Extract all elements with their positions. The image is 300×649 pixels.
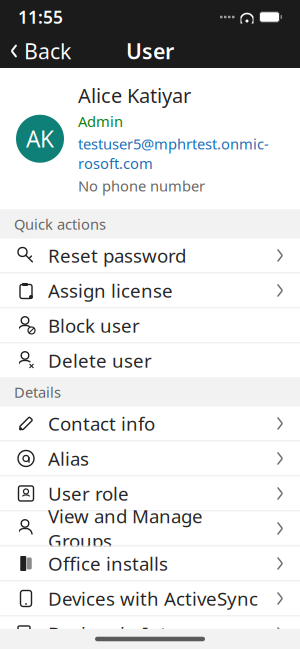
staticText: Reset password — [48, 243, 186, 268]
button[interactable]: User role — [0, 476, 300, 511]
staticText: Devices with ActiveSync — [48, 586, 258, 611]
staticText: Alice Katiyar — [78, 82, 191, 109]
staticText: No phone number — [78, 176, 205, 195]
staticText: Back — [24, 37, 71, 65]
button[interactable]: Delete user — [0, 343, 300, 377]
staticText: Office installs — [48, 551, 168, 576]
staticText: 11:55 — [18, 5, 63, 28]
button[interactable]: Contact info — [0, 406, 300, 441]
button[interactable]: Devices with ActiveSync — [0, 581, 300, 616]
staticText: Admin — [78, 112, 123, 131]
button[interactable]: View and Manage Groups — [0, 511, 300, 546]
staticText: AK — [26, 124, 54, 154]
staticText: User role — [48, 481, 129, 506]
staticText: Alias — [48, 446, 89, 471]
button[interactable]: Assign license — [0, 273, 300, 308]
button[interactable]: Devices in Intune — [0, 616, 300, 649]
button[interactable]: Reset password — [0, 238, 300, 273]
button[interactable]: Block user — [0, 308, 300, 343]
button[interactable]: Alias — [0, 441, 300, 476]
staticText: User — [126, 37, 174, 65]
staticText: Devices in Intune — [48, 621, 202, 646]
staticText: Details — [14, 382, 61, 402]
staticText: Assign license — [48, 278, 173, 303]
staticText: Block user — [48, 313, 140, 338]
staticText: Contact info — [48, 411, 155, 436]
button[interactable]: Office installs — [0, 546, 300, 581]
button[interactable]: Back — [0, 31, 71, 71]
staticText: Delete user — [48, 348, 152, 373]
staticText: View and Manage Groups — [48, 504, 203, 553]
staticText: testuser5@mphrtest.onmicrosoft.com — [78, 134, 269, 173]
staticText: Quick actions — [14, 214, 106, 234]
